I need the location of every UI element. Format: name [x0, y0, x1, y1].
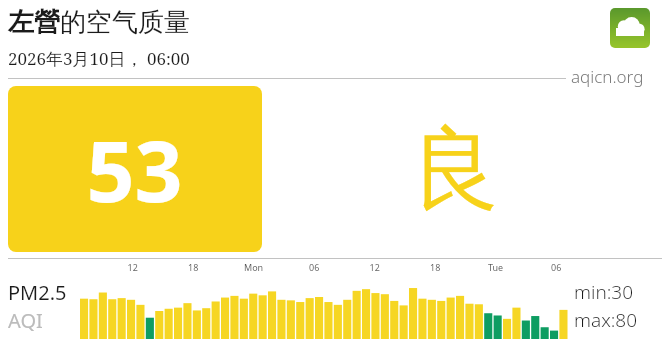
button[interactable]: Zuoying air quality, AQI 53, Good: [0, 0, 670, 350]
